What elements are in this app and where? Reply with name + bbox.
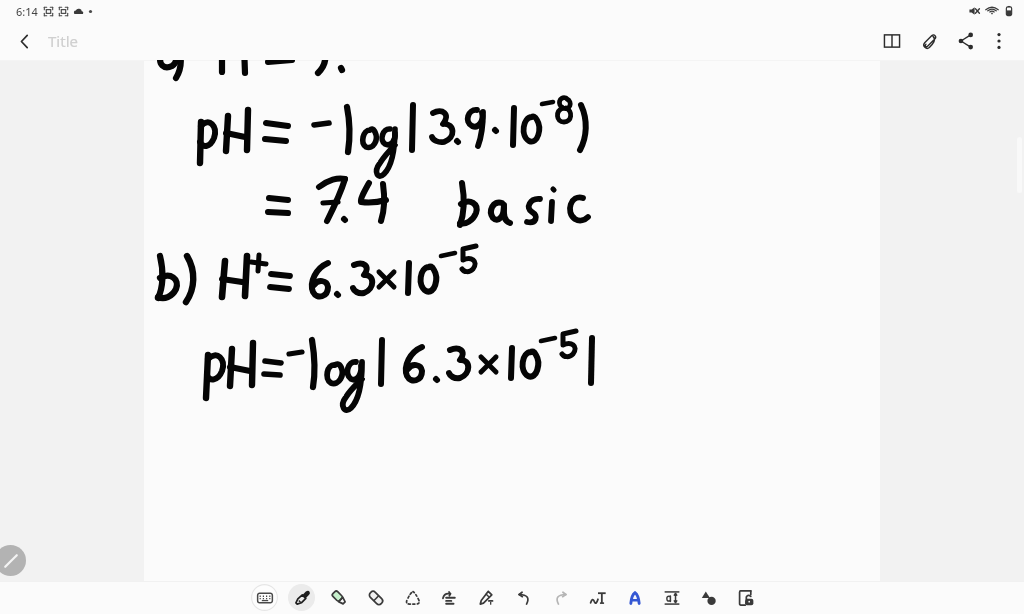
button[interactable]: Book view	[873, 22, 910, 60]
button[interactable]: Lock page	[727, 581, 764, 614]
button[interactable]: Lasso select	[394, 581, 431, 614]
button[interactable]: Undo	[505, 581, 542, 614]
button[interactable]: Attach	[910, 22, 947, 60]
button[interactable]: Convert to text	[579, 581, 616, 614]
button[interactable]: Insert space	[431, 581, 468, 614]
button[interactable]: Back	[5, 22, 43, 60]
button[interactable]: Auto	[616, 581, 653, 614]
staticText: 6:14	[16, 4, 38, 19]
button[interactable]: Redo	[542, 581, 579, 614]
button[interactable]: Pen	[283, 581, 320, 614]
staticText: Title	[48, 31, 78, 51]
button[interactable]: Shapes	[690, 581, 727, 614]
button[interactable]: Eraser	[357, 581, 394, 614]
button[interactable]: Text size	[653, 581, 690, 614]
button[interactable]: Highlighter	[320, 581, 357, 614]
button[interactable]: Keyboard	[246, 581, 283, 614]
button[interactable]: Share	[947, 22, 984, 60]
button[interactable]: Pen settings	[468, 581, 505, 614]
button[interactable]: Edit	[0, 545, 26, 576]
button[interactable]: More options	[984, 22, 1014, 60]
